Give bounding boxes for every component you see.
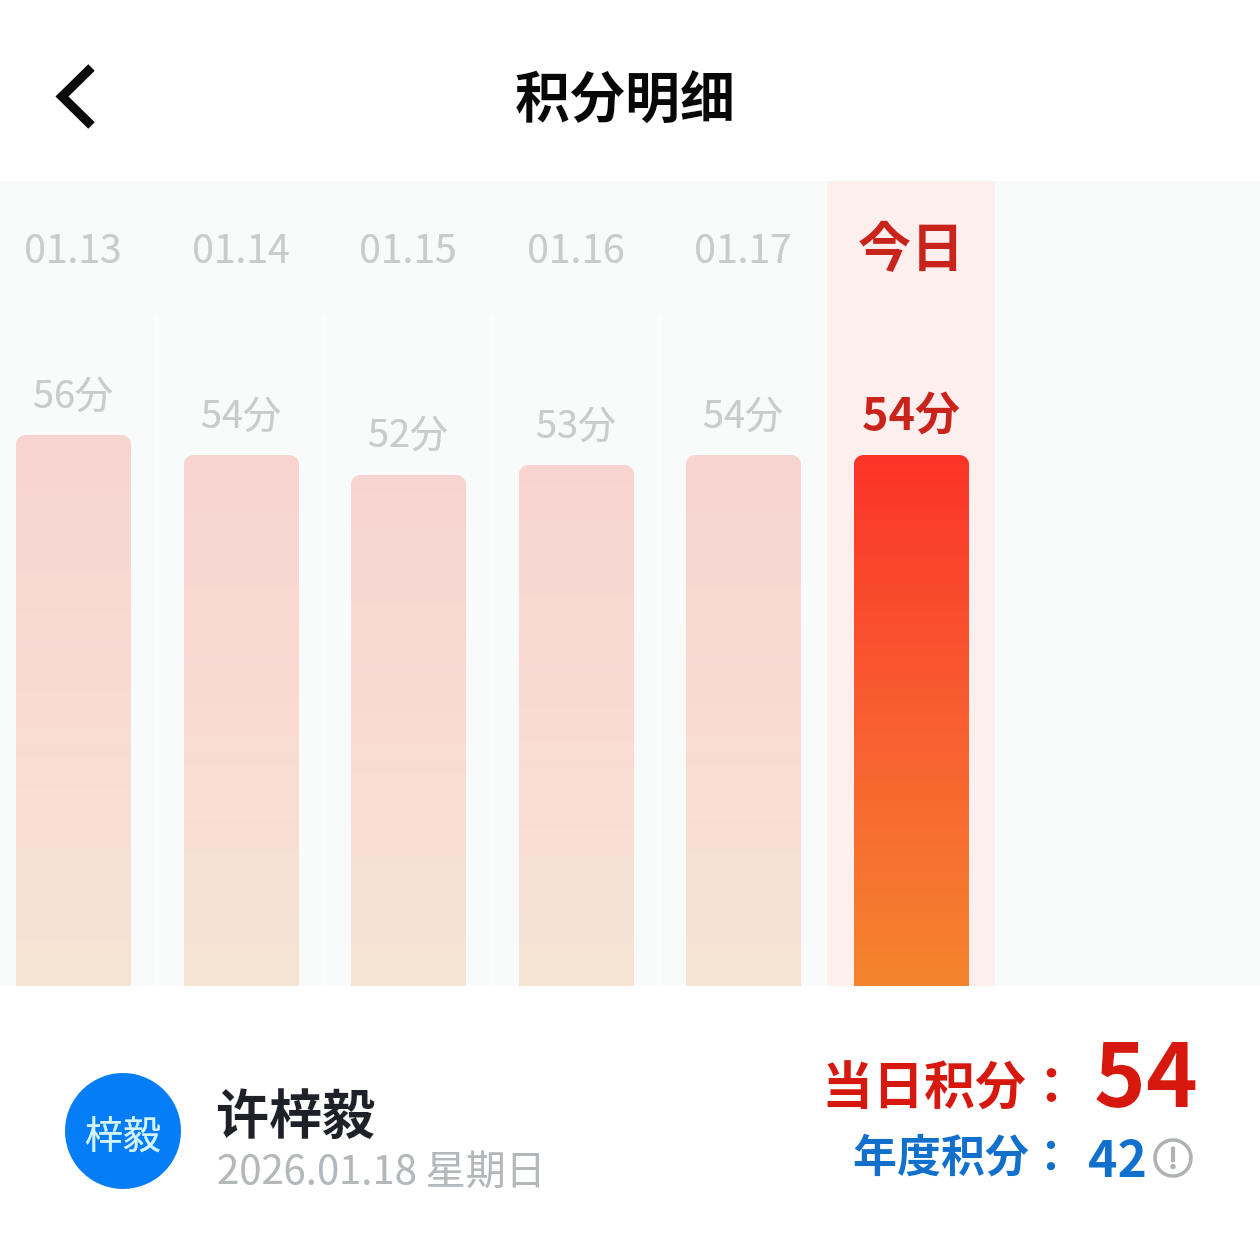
button[interactable]: Back [36,54,110,138]
staticText: 许梓毅 [216,1073,375,1150]
staticText: 53分 [492,394,660,449]
staticText: 01.14 [157,218,325,274]
staticText: 54分 [827,378,995,443]
button[interactable]: 梓毅 [56,1064,556,1198]
staticText: 56分 [0,364,157,419]
button[interactable]: Info [1153,1138,1193,1178]
button[interactable]: 01.14 [157,181,325,986]
staticText: 54分 [157,384,325,439]
button[interactable]: 今日 [827,181,995,986]
staticText: 2026.01.18 星期日 [217,1138,546,1196]
staticText: 01.16 [492,218,660,274]
staticText: 01.15 [324,218,492,274]
button[interactable]: 01.16 [492,181,660,986]
staticText: 54分 [659,384,827,439]
staticText: 01.17 [659,218,827,274]
button[interactable]: 01.13 [0,181,157,986]
staticText: 年度积分： [853,1121,1073,1185]
button[interactable]: 01.17 [659,181,827,986]
staticText: 积分明细 [515,53,736,133]
staticText: 01.13 [0,218,157,274]
staticText: 52分 [324,403,492,458]
staticText: 今日 [827,206,995,283]
staticText: 42 [1088,1119,1147,1191]
staticText: 梓毅 [85,1104,162,1159]
staticText: 当日积分： [822,1045,1078,1119]
button[interactable]: 01.15 [324,181,492,986]
staticText: 54 [1094,1005,1198,1132]
